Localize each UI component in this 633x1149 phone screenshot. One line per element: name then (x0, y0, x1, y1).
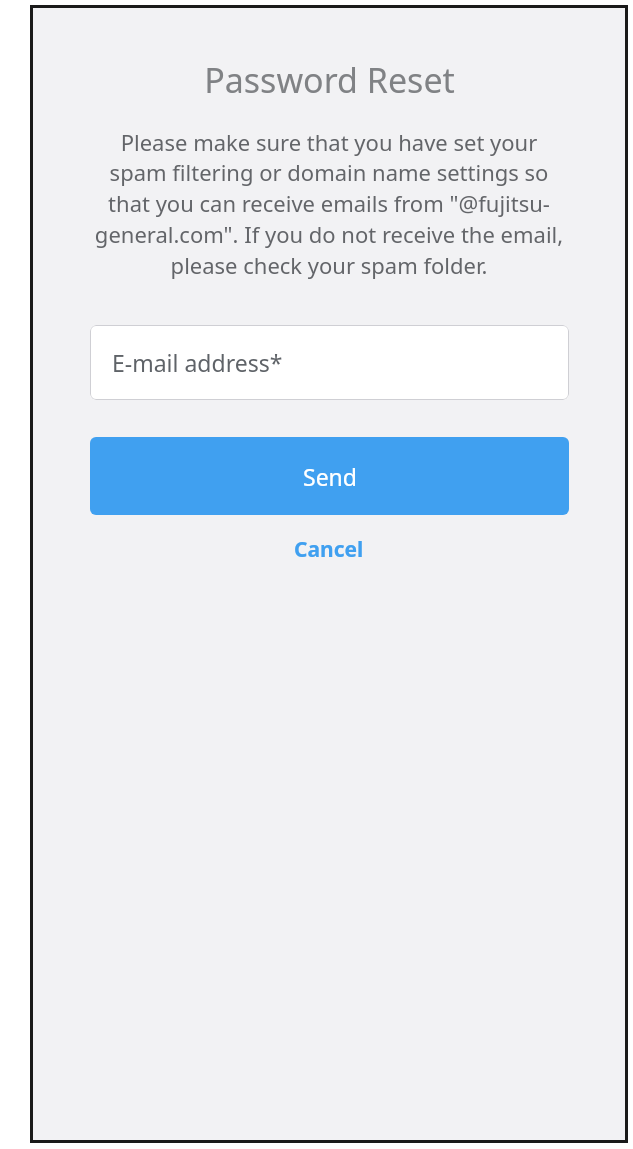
staticText: E-mail address* (112, 347, 283, 378)
button[interactable]: Cancel (284, 529, 374, 570)
staticText: Please make sure that you have set your … (90, 127, 568, 281)
staticText: Send (303, 461, 357, 492)
button[interactable]: E-mail address* (90, 325, 569, 400)
staticText: Password Reset (204, 57, 455, 103)
staticText: Cancel (294, 535, 364, 564)
button[interactable]: Send (90, 437, 569, 515)
